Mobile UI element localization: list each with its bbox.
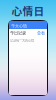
- staticText: 查看: [37, 30, 45, 36]
- staticText: 记录每一天的心情: [10, 38, 34, 43]
- staticText: 今日记录: [10, 30, 26, 36]
- staticText: 今天心情: [11, 23, 27, 29]
- staticText: 心情日记: [11, 3, 44, 34]
